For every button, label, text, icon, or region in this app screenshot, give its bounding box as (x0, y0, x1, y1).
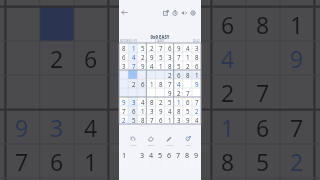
button[interactable] (119, 79, 129, 88)
button[interactable]: 2 (129, 79, 138, 88)
button[interactable]: 4 (183, 43, 192, 52)
button[interactable]: 1 (129, 43, 138, 52)
button[interactable]: 2 (174, 88, 183, 97)
button[interactable]: Notes (162, 136, 176, 146)
button[interactable]: 1 (183, 52, 192, 61)
button[interactable] (119, 88, 129, 97)
button[interactable]: 3 (174, 115, 183, 124)
button[interactable]: Undo (126, 136, 140, 146)
button[interactable]: 8 (119, 43, 129, 52)
button[interactable]: 6 (165, 150, 174, 163)
button[interactable]: Sound (181, 10, 187, 16)
button[interactable]: 2 (138, 52, 147, 61)
button[interactable]: 5 (138, 43, 147, 52)
button[interactable]: 7 (119, 106, 129, 115)
button[interactable]: 2 (147, 43, 156, 52)
button[interactable] (156, 70, 165, 79)
button[interactable]: 9 (165, 88, 174, 97)
button[interactable]: 1 (147, 79, 156, 88)
button[interactable]: 9 (174, 43, 183, 52)
button[interactable]: 9 (183, 115, 192, 124)
button[interactable]: 4 (147, 150, 156, 163)
button[interactable]: 2 (156, 97, 165, 106)
button[interactable]: New game (163, 10, 169, 16)
button[interactable]: 7 (174, 52, 183, 61)
button[interactable]: 7 (165, 79, 174, 88)
button[interactable]: 8 (138, 115, 147, 124)
button[interactable]: Erase (144, 136, 158, 146)
button[interactable]: Hint (181, 136, 195, 146)
staticText: 8 (159, 80, 163, 88)
button[interactable]: 2 (192, 106, 201, 115)
button[interactable]: 5 (174, 61, 183, 70)
button[interactable] (156, 88, 165, 97)
button[interactable] (147, 70, 156, 79)
button[interactable]: 7 (156, 43, 165, 52)
button[interactable] (138, 88, 147, 97)
button[interactable]: Back (121, 9, 128, 16)
button[interactable]: 8 (147, 97, 156, 106)
button[interactable]: 7 (183, 88, 192, 97)
button[interactable]: 6 (129, 106, 138, 115)
button[interactable]: 8 (156, 79, 165, 88)
button[interactable]: 5 (183, 106, 192, 115)
button[interactable]: 8 (174, 106, 183, 115)
button[interactable]: 1 (119, 150, 129, 163)
button[interactable]: 6 (183, 97, 192, 106)
button[interactable]: 7 (174, 150, 183, 163)
button[interactable]: 3 (192, 43, 201, 52)
button[interactable]: 6 (138, 79, 147, 88)
button[interactable]: 2 (165, 70, 174, 79)
button[interactable]: 5 (156, 52, 165, 61)
button[interactable]: 6 (156, 115, 165, 124)
button[interactable] (129, 88, 138, 97)
button[interactable]: 1 (192, 70, 201, 79)
button[interactable]: 1 (138, 106, 147, 115)
button[interactable]: 8 (183, 70, 192, 79)
button[interactable]: 9 (119, 97, 129, 106)
button[interactable]: 7 (192, 97, 201, 106)
button[interactable]: Timer (172, 10, 178, 16)
button[interactable]: 9 (156, 106, 165, 115)
button[interactable]: 5 (129, 115, 138, 124)
button[interactable]: 2 (183, 61, 192, 70)
button[interactable]: 1 (174, 97, 183, 106)
button[interactable]: 6 (165, 43, 174, 52)
button[interactable] (119, 70, 129, 79)
button[interactable]: 9 (192, 79, 201, 88)
button[interactable]: 1 (165, 115, 174, 124)
button[interactable]: 6 (174, 70, 183, 79)
button[interactable]: 3 (129, 97, 138, 106)
button[interactable]: 4 (147, 61, 156, 70)
button[interactable]: 6 (192, 61, 201, 70)
button[interactable]: 4 (165, 106, 174, 115)
button[interactable]: 3 (147, 106, 156, 115)
button[interactable]: 8 (183, 150, 192, 163)
button[interactable] (138, 70, 147, 79)
button[interactable]: 4 (174, 79, 183, 88)
button[interactable] (147, 88, 156, 97)
button[interactable]: Settings (190, 10, 196, 16)
button[interactable]: 3 (165, 52, 174, 61)
button[interactable]: 6 (119, 52, 129, 61)
button[interactable]: 3 (119, 61, 129, 70)
button[interactable]: 4 (129, 52, 138, 61)
button[interactable] (192, 88, 201, 97)
button[interactable]: 7 (129, 61, 138, 70)
button[interactable]: 4 (192, 115, 201, 124)
button[interactable]: 8 (192, 52, 201, 61)
button[interactable]: 3 (138, 150, 147, 163)
button[interactable]: 8 (165, 61, 174, 70)
button[interactable]: 7 (147, 115, 156, 124)
button[interactable]: 9 (192, 150, 201, 163)
button[interactable]: 9 (147, 52, 156, 61)
button[interactable] (183, 79, 192, 88)
button[interactable]: 2 (119, 115, 129, 124)
button[interactable]: 4 (138, 97, 147, 106)
button[interactable]: 5 (165, 97, 174, 106)
button[interactable]: 1 (156, 61, 165, 70)
button[interactable]: 5 (156, 150, 165, 163)
button[interactable] (129, 70, 138, 79)
button[interactable]: 9 (138, 61, 147, 70)
